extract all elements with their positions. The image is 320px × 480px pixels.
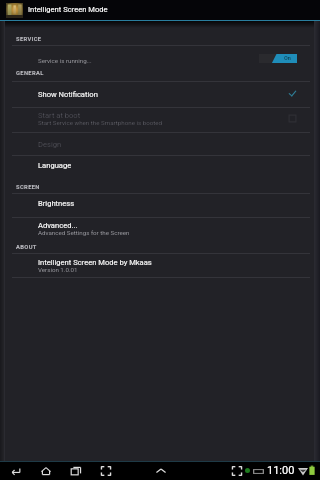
button[interactable] [0, 45, 320, 81]
staticText: Design [38, 140, 62, 149]
staticText: Start Service when the Smartphone is boo… [38, 119, 163, 126]
button[interactable] [0, 193, 320, 217]
staticText: Brightness [38, 199, 75, 208]
staticText: Version 1.0.01 [38, 266, 78, 273]
button[interactable]: Start at boot checkbox, unchecked [288, 114, 297, 123]
button[interactable] [0, 132, 320, 155]
staticText: Intelligent Screen Mode [28, 5, 108, 14]
button[interactable] [0, 155, 320, 178]
button[interactable]: Service on/off switch [259, 54, 297, 63]
staticText: Service is running... [38, 57, 92, 64]
button[interactable]: Home [38, 463, 53, 478]
button[interactable]: Show navigation [153, 463, 168, 478]
staticText: Start at boot [38, 111, 81, 120]
staticText: ABOUT [16, 244, 37, 251]
button[interactable] [0, 253, 320, 277]
staticText: Show Notification [38, 90, 98, 99]
staticText: SCREEN [16, 184, 40, 191]
staticText: 11:00 [267, 464, 295, 477]
button[interactable] [0, 217, 320, 241]
button[interactable] [0, 107, 320, 132]
staticText: Advanced Settings for the Screen [38, 229, 130, 236]
button[interactable]: Back [8, 463, 23, 478]
staticText: Language [38, 161, 72, 170]
other: Sync status [243, 466, 252, 475]
staticText: SERVICE [16, 36, 42, 43]
staticText: Intelligent Screen Mode by Mkaas [38, 258, 152, 267]
button[interactable]: Screenshot [98, 463, 113, 478]
button[interactable]: Fullscreen [229, 463, 244, 478]
button[interactable] [0, 81, 320, 107]
staticText: On [284, 55, 291, 61]
button[interactable]: Recent apps [68, 463, 83, 478]
button[interactable]: Show Notification checkbox, checked [288, 89, 297, 98]
staticText: GENERAL [16, 70, 44, 77]
staticText: Advanced... [38, 221, 78, 230]
